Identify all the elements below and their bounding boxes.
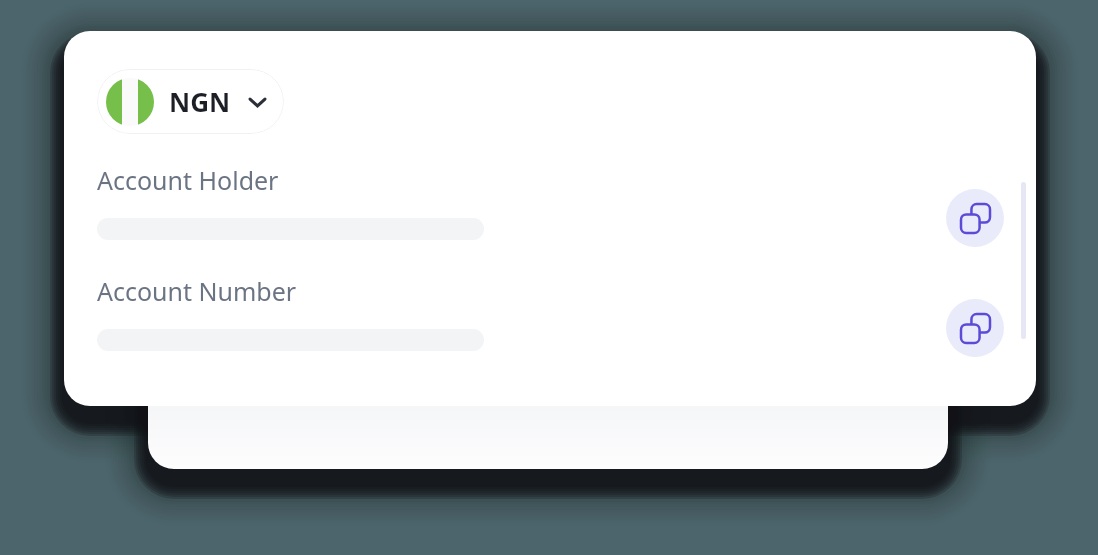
staticText: NGN xyxy=(169,84,231,119)
button[interactable]: Copy xyxy=(946,189,1004,247)
button[interactable]: NGN xyxy=(97,69,284,134)
button[interactable]: Copy xyxy=(946,299,1004,357)
staticText: Account Number xyxy=(97,274,297,308)
staticText: Account Holder xyxy=(97,163,279,197)
